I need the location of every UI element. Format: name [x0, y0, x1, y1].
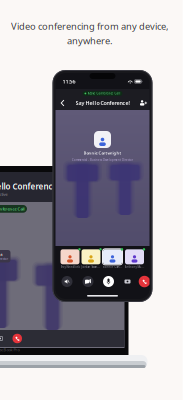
button[interactable]: Speaker	[61, 276, 72, 287]
button[interactable]: Grid view	[0, 336, 8, 341]
button[interactable]: Back	[57, 97, 68, 109]
staticText: Jordan Swan...	[81, 265, 100, 269]
staticText: Bonnie Cart...	[102, 265, 122, 269]
staticText: Business Development Director	[0, 257, 8, 261]
staticText: Bonnie Cartwright	[83, 150, 121, 156]
staticText: 11:56	[62, 78, 75, 85]
staticText: Active Conference Call	[87, 92, 120, 95]
staticText: Say Hello Conference!	[0, 181, 59, 192]
button[interactable]: End call	[8, 334, 26, 343]
staticText: Troy Needlink	[60, 265, 79, 269]
button[interactable]: Mute microphone	[103, 276, 114, 287]
button[interactable]: Turn camera off	[82, 276, 93, 287]
staticText: Say Hello Conference!	[75, 99, 129, 107]
button[interactable]: Jordan Swan...	[81, 249, 100, 269]
button[interactable]: Anthony Mu...	[124, 249, 144, 269]
staticText: MacBook Pro	[0, 347, 19, 352]
staticText: anywhere.	[67, 34, 113, 47]
staticText: Bonnie Cartwright	[0, 252, 3, 257]
button[interactable]: Bonnie Cart...	[102, 249, 122, 269]
staticText: Video conferencing from any device,	[11, 20, 169, 32]
staticText: 4 members active	[0, 192, 7, 197]
button[interactable]: Add participant	[137, 97, 149, 109]
button[interactable]: End call	[139, 276, 150, 287]
staticText: Anthony Mu...	[124, 265, 144, 269]
staticText: Commercial - Business Development Direct…	[72, 158, 133, 162]
staticText: Active Conference Call	[0, 206, 24, 211]
button[interactable]: Troy Needlink	[60, 249, 79, 269]
button[interactable]: Flip camera	[122, 276, 133, 287]
